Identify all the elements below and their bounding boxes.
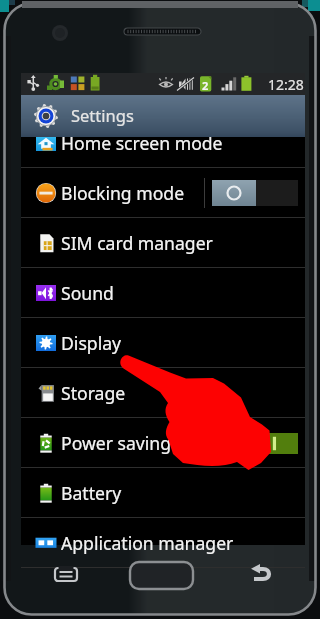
staticText: Sound [61, 281, 114, 305]
button[interactable]: Blocking mode [21, 168, 305, 218]
button[interactable]: Settings [21, 95, 305, 137]
staticText: Home screen mode [61, 131, 223, 155]
button[interactable]: Power saving toggle [264, 433, 298, 454]
staticText: Storage [61, 381, 126, 405]
staticText: Display [61, 331, 122, 355]
button[interactable]: Power saving [21, 418, 305, 468]
button[interactable]: Storage [21, 368, 305, 418]
button[interactable]: SIM card manager [21, 218, 305, 268]
staticText: Blocking mode [61, 181, 185, 205]
staticText: SIM card manager [61, 231, 213, 255]
button[interactable]: Application manager [21, 518, 305, 568]
staticText: Settings [71, 104, 134, 126]
staticText: 12:28 [268, 75, 304, 94]
button[interactable]: Home screen mode [21, 118, 305, 168]
button[interactable]: Battery [21, 468, 305, 518]
staticText: Battery [61, 481, 122, 505]
button[interactable]: Sound [21, 268, 305, 318]
button[interactable]: Display [21, 318, 305, 368]
staticText: Application manager [61, 531, 234, 555]
staticText: 2 [202, 78, 209, 93]
staticText: Power saving [61, 431, 171, 455]
button[interactable]: Blocking mode toggle [212, 180, 298, 206]
